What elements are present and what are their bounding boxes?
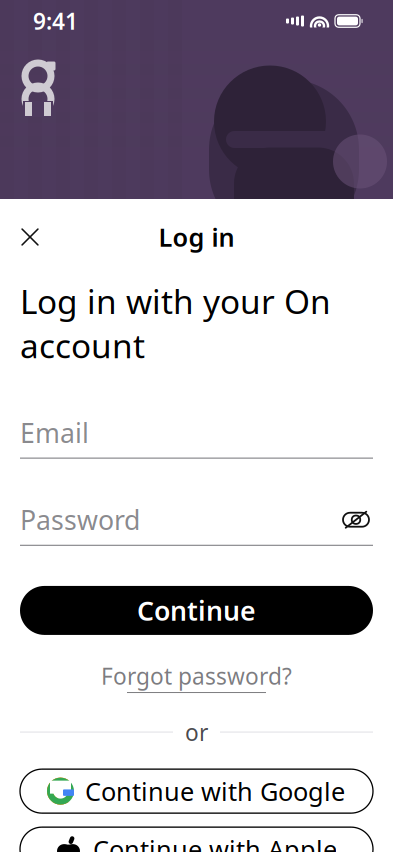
button[interactable]: Continue with Apple	[20, 827, 373, 852]
staticText: Email	[20, 415, 89, 450]
staticText: or	[185, 717, 208, 747]
button[interactable]: Continue with Google	[20, 769, 373, 813]
staticText: Password	[20, 502, 140, 537]
button[interactable]: Forgot password?	[101, 661, 292, 693]
staticText: Log in with your On account	[20, 279, 331, 367]
staticText: 9:41	[33, 6, 78, 36]
staticText: Log in	[158, 220, 234, 254]
staticText: Continue	[137, 593, 256, 628]
staticText: Forgot password?	[101, 661, 292, 691]
staticText: Continue with Google	[85, 774, 345, 808]
button[interactable]: Show password	[339, 505, 373, 535]
staticText: Continue with Apple	[93, 832, 337, 852]
button[interactable]: Continue	[20, 586, 373, 635]
button[interactable]: Close	[8, 215, 52, 259]
